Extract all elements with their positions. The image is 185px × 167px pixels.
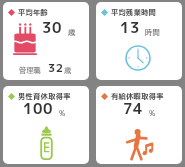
staticText: 平均残業時間 bbox=[111, 7, 157, 17]
staticText: 歳 bbox=[68, 27, 76, 37]
button[interactable]: Paid leave taken 74 percent bbox=[96, 86, 182, 164]
staticText: 30 bbox=[42, 17, 63, 38]
staticText: 時間 bbox=[145, 27, 160, 37]
staticText: 100 bbox=[23, 98, 54, 119]
staticText: 32 bbox=[48, 60, 64, 76]
staticText: 管理職 bbox=[19, 65, 41, 75]
staticText: 13 bbox=[120, 17, 141, 38]
staticText: 有給休暇取得率 bbox=[111, 91, 164, 101]
staticText: % bbox=[149, 108, 156, 118]
staticText: 歳 bbox=[64, 65, 72, 75]
staticText: 74 bbox=[123, 98, 144, 119]
button[interactable]: Average overtime 13 hours bbox=[96, 2, 182, 80]
staticText: 男性育休取得率 bbox=[18, 91, 71, 101]
staticText: % bbox=[59, 108, 66, 118]
button[interactable]: Average age 30 bbox=[3, 2, 89, 80]
button[interactable]: Male parental leave 100 percent bbox=[3, 86, 89, 164]
staticText: 平均年齢 bbox=[18, 7, 49, 17]
